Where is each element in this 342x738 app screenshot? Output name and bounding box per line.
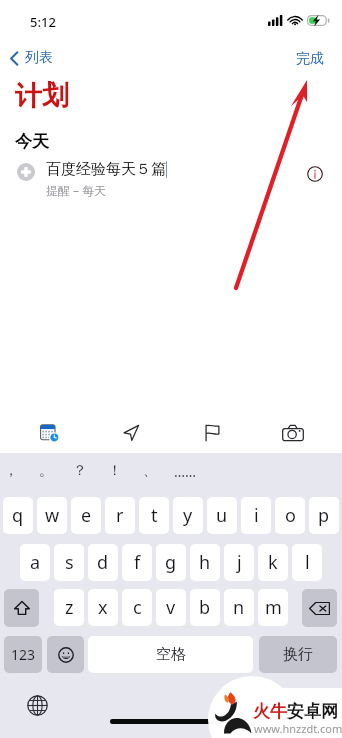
staticText: a bbox=[30, 550, 41, 575]
staticText: p bbox=[318, 503, 330, 528]
staticText: o bbox=[285, 503, 296, 528]
button[interactable]: 空格 bbox=[88, 636, 253, 673]
staticText: 今天 bbox=[15, 131, 49, 152]
button[interactable]: r bbox=[105, 497, 135, 534]
button[interactable]: f bbox=[122, 544, 152, 581]
staticText: www.hnzzdt.com bbox=[254, 721, 342, 736]
staticText: z bbox=[65, 595, 74, 620]
button[interactable]: s bbox=[54, 544, 84, 581]
staticText: 换行 bbox=[283, 645, 313, 664]
button[interactable]: v bbox=[156, 589, 186, 626]
button[interactable]: q bbox=[3, 497, 33, 534]
button[interactable]: …… bbox=[173, 461, 197, 481]
button[interactable]: l bbox=[292, 544, 322, 581]
staticText: b bbox=[199, 595, 211, 620]
button[interactable]: x bbox=[88, 589, 118, 626]
button[interactable]: i bbox=[241, 497, 271, 534]
staticText: y bbox=[183, 503, 193, 528]
button[interactable]: k bbox=[258, 544, 288, 581]
button[interactable]: 完成 bbox=[293, 48, 327, 70]
staticText: …… bbox=[174, 462, 197, 481]
staticText: s bbox=[65, 550, 74, 575]
button[interactable]: j bbox=[224, 544, 254, 581]
button[interactable]: h bbox=[190, 544, 220, 581]
staticText: g bbox=[165, 550, 177, 575]
staticText: 火牛 bbox=[253, 701, 287, 722]
button[interactable]: g bbox=[156, 544, 186, 581]
button[interactable]: 列表 bbox=[7, 47, 56, 69]
staticText: ， bbox=[4, 462, 18, 480]
button[interactable]: b bbox=[190, 589, 220, 626]
button[interactable]: u bbox=[207, 497, 237, 534]
staticText: v bbox=[166, 595, 176, 620]
button[interactable]: 、 bbox=[138, 461, 162, 481]
staticText: 、 bbox=[143, 462, 157, 480]
button[interactable]: 。 bbox=[34, 461, 58, 481]
staticText: x bbox=[98, 595, 108, 620]
button[interactable]: ！ bbox=[103, 461, 127, 481]
staticText: u bbox=[216, 503, 228, 528]
staticText: j bbox=[237, 550, 242, 575]
staticText: q bbox=[12, 503, 24, 528]
staticText: ！ bbox=[108, 462, 122, 480]
button[interactable]: 标记 bbox=[201, 412, 223, 453]
staticText: w bbox=[45, 503, 60, 528]
button[interactable]: ， bbox=[0, 461, 23, 481]
button[interactable]: 切换键盘 bbox=[25, 693, 49, 717]
staticText: m bbox=[265, 595, 282, 620]
staticText: 安卓网 bbox=[287, 701, 338, 722]
button[interactable]: 详细信息 bbox=[303, 162, 326, 185]
staticText: c bbox=[133, 595, 142, 620]
staticText: ？ bbox=[73, 462, 87, 480]
button[interactable]: a bbox=[20, 544, 50, 581]
button[interactable]: w bbox=[37, 497, 67, 534]
button[interactable]: ？ bbox=[68, 461, 92, 481]
button[interactable]: Backspace bbox=[302, 589, 337, 627]
button[interactable]: t bbox=[139, 497, 169, 534]
button[interactable]: Shift bbox=[4, 589, 39, 627]
staticText: 提醒 – 每天 bbox=[46, 182, 107, 198]
button[interactable]: 百度经验每天５篇 bbox=[0, 160, 342, 202]
staticText: i bbox=[254, 503, 259, 528]
staticText: t bbox=[151, 503, 158, 528]
button[interactable]: p bbox=[309, 497, 339, 534]
button[interactable]: 123 bbox=[4, 636, 42, 673]
staticText: 完成 bbox=[296, 50, 324, 68]
button[interactable]: 日期 bbox=[38, 412, 60, 453]
staticText: 百度经验每天５篇 bbox=[46, 160, 166, 179]
staticText: e bbox=[81, 503, 92, 528]
staticText: k bbox=[268, 550, 278, 575]
button[interactable]: y bbox=[173, 497, 203, 534]
staticText: 空格 bbox=[156, 645, 186, 664]
button[interactable]: o bbox=[275, 497, 305, 534]
staticText: l bbox=[305, 550, 310, 575]
button[interactable]: 表情 bbox=[47, 636, 84, 673]
button[interactable]: n bbox=[224, 589, 254, 626]
staticText: n bbox=[233, 595, 245, 620]
button[interactable]: e bbox=[71, 497, 101, 534]
button[interactable]: m bbox=[258, 589, 288, 626]
button[interactable]: z bbox=[54, 589, 84, 626]
staticText: 。 bbox=[39, 462, 53, 480]
staticText: r bbox=[116, 503, 124, 528]
staticText: d bbox=[97, 550, 109, 575]
staticText: h bbox=[199, 550, 211, 575]
staticText: 列表 bbox=[25, 49, 53, 67]
button[interactable]: d bbox=[88, 544, 118, 581]
staticText: 计划 bbox=[15, 79, 69, 113]
button[interactable]: 换行 bbox=[259, 636, 337, 673]
button[interactable]: c bbox=[122, 589, 152, 626]
button[interactable]: 相机 bbox=[281, 412, 305, 453]
staticText: 123 bbox=[11, 645, 36, 664]
staticText: f bbox=[134, 550, 141, 575]
staticText: 5:12 bbox=[30, 13, 56, 31]
button[interactable]: 位置 bbox=[120, 412, 142, 453]
